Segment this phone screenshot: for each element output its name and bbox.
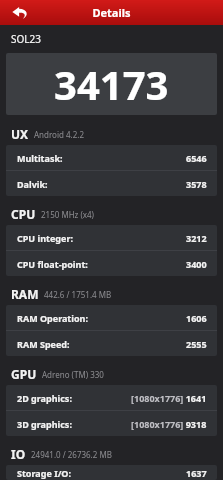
staticText: 3578	[186, 178, 207, 190]
staticText: CPU float-point:	[17, 258, 88, 270]
staticText: Multitask:	[17, 152, 63, 164]
staticText: 34173	[54, 57, 169, 111]
staticText: Details	[92, 5, 131, 20]
button[interactable]: CPU integer:	[6, 225, 217, 250]
staticText: RAM Operation:	[17, 312, 88, 324]
staticText: RAM Speed:	[17, 338, 70, 350]
staticText: SOL23	[11, 32, 41, 46]
staticText: Adreno (TM) 330	[42, 369, 104, 380]
button[interactable]: Multitask:	[6, 145, 217, 170]
button[interactable]: 2D graphics:	[6, 385, 217, 410]
staticText: 442.6 / 1751.4 MB	[44, 289, 112, 300]
staticText: 2D graphics:	[17, 392, 72, 404]
staticText: 3212	[186, 232, 207, 244]
staticText: UX	[11, 126, 29, 142]
button[interactable]: Back	[0, 0, 40, 25]
button[interactable]: CPU float-point:	[6, 251, 217, 276]
button[interactable]: RAM Operation:	[6, 305, 217, 330]
button[interactable]: Storage I/O:	[6, 465, 217, 480]
staticText: GPU	[11, 366, 37, 382]
staticText: 3400	[186, 258, 207, 270]
staticText: 1606	[186, 312, 207, 324]
staticText: 6546	[186, 152, 207, 164]
button[interactable]: Dalvik:	[6, 171, 217, 196]
staticText: 24941.0 / 26736.2 MB	[31, 449, 112, 460]
staticText: Android 4.2.2	[34, 129, 85, 140]
staticText: [1080x1776] 9318	[131, 418, 207, 430]
button[interactable]: 3D graphics:	[6, 411, 217, 436]
button[interactable]: RAM Speed:	[6, 331, 217, 356]
staticText: RAM	[11, 286, 39, 302]
staticText: CPU integer:	[17, 232, 73, 244]
staticText: [1080x1776] 1641	[131, 392, 207, 404]
staticText: 1637	[186, 467, 207, 479]
staticText: CPU	[11, 206, 36, 222]
staticText: 2150 MHz (x4)	[41, 209, 95, 220]
staticText: Dalvik:	[17, 178, 48, 190]
staticText: 2555	[186, 338, 207, 350]
staticText: 3D graphics:	[17, 418, 72, 430]
staticText: Storage I/O:	[17, 467, 72, 479]
staticText: IO	[11, 446, 26, 462]
